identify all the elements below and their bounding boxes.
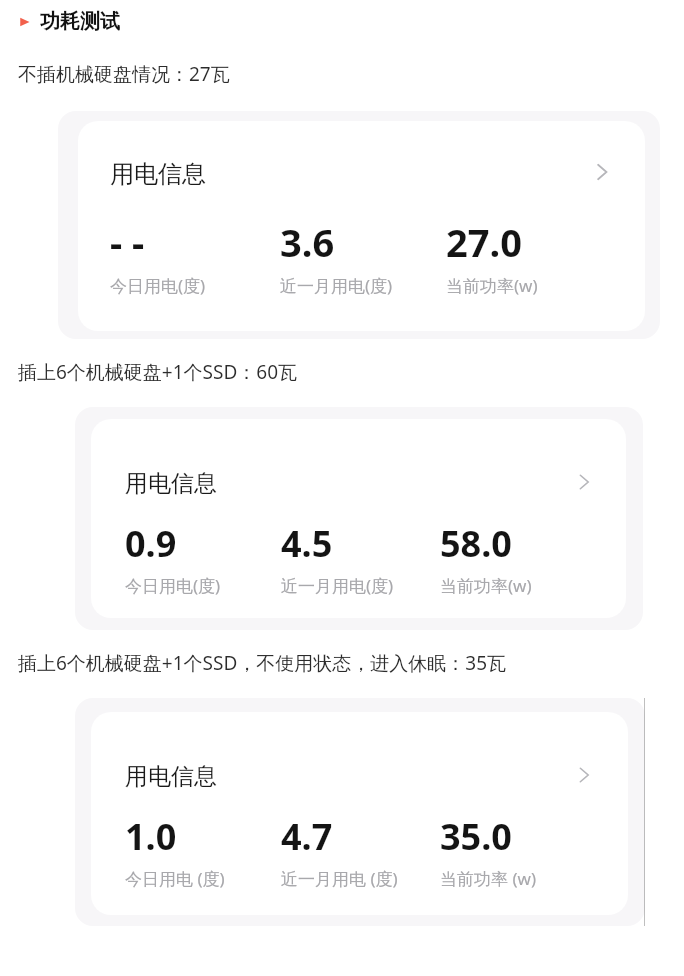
staticText: 4.7 [281, 812, 333, 861]
staticText: 近一月用电 (度) [281, 867, 398, 890]
staticText: 当前功率(w) [446, 274, 538, 297]
staticText: 功耗测试 [40, 9, 120, 34]
button[interactable]: 用电信息 [91, 419, 626, 618]
button[interactable]: 用电信息 [91, 712, 628, 915]
staticText: 今日用电(度) [110, 274, 206, 297]
button[interactable]: 用电信息 [78, 121, 645, 331]
staticText: 用电信息 [110, 159, 206, 189]
staticText: 27.0 [446, 216, 522, 268]
other: 查看用电信息详情 [588, 158, 616, 186]
staticText: 0.9 [125, 519, 177, 568]
other: 查看用电信息详情 [571, 762, 597, 788]
staticText: 4.5 [281, 519, 333, 568]
staticText: 35.0 [440, 812, 512, 861]
staticText: 当前功率(w) [440, 574, 532, 597]
staticText: 近一月用电(度) [280, 274, 393, 297]
staticText: 用电信息 [125, 762, 217, 791]
staticText: - - [110, 216, 145, 268]
staticText: 1.0 [125, 812, 177, 861]
staticText: 用电信息 [125, 469, 217, 498]
staticText: 近一月用电(度) [281, 574, 394, 597]
staticText: 今日用电(度) [125, 574, 221, 597]
staticText: 不插机械硬盘情况：27瓦 [18, 61, 230, 87]
staticText: 插上6个机械硬盘+1个SSD：60瓦 [18, 359, 298, 385]
staticText: 插上6个机械硬盘+1个SSD，不使用状态，进入休眠：35瓦 [18, 650, 507, 676]
staticText: 58.0 [440, 519, 512, 568]
staticText: 当前功率 (w) [440, 867, 536, 890]
staticText: 今日用电 (度) [125, 867, 225, 890]
button[interactable]: 功耗测试 [18, 9, 120, 34]
staticText: 3.6 [280, 216, 335, 268]
other: 查看用电信息详情 [571, 469, 597, 495]
